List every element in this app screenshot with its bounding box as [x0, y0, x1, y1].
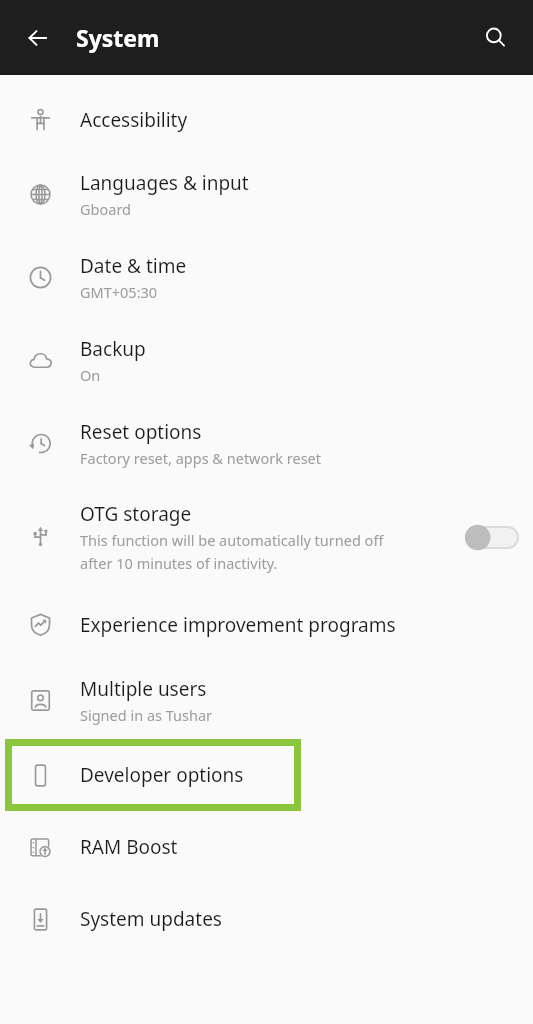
staticText: Experience improvement programs [80, 612, 396, 638]
staticText: after 10 minutes of inactivity. [80, 553, 278, 573]
button[interactable]: Accessibility [0, 87, 533, 153]
staticText: Gboard [80, 199, 131, 219]
staticText: Reset options [80, 419, 202, 445]
staticText: Accessibility [80, 107, 188, 133]
button[interactable]: OTG storage toggle [468, 526, 518, 548]
staticText: Date & time [80, 253, 187, 279]
staticText: System [76, 22, 160, 53]
staticText: Developer options [80, 762, 244, 788]
staticText: This function will be automatically turn… [80, 530, 384, 550]
button[interactable]: Reset options [0, 402, 533, 485]
staticText: Multiple users [80, 676, 207, 702]
staticText: GMT+05:30 [80, 282, 158, 302]
button[interactable]: OTG storage [0, 485, 533, 588]
staticText: Signed in as Tushar [80, 705, 213, 725]
button[interactable]: Languages & input [0, 153, 533, 236]
button[interactable]: Back [0, 0, 76, 75]
button[interactable]: Backup [0, 319, 533, 402]
staticText: System updates [80, 906, 222, 932]
button[interactable]: Date & time [0, 236, 533, 319]
staticText: OTG storage [80, 501, 192, 527]
button[interactable]: RAM Boost [0, 811, 533, 883]
staticText: On [80, 365, 101, 385]
staticText: Factory reset, apps & network reset [80, 448, 322, 468]
button[interactable]: Multiple users [0, 661, 533, 739]
staticText: Languages & input [80, 170, 249, 196]
staticText: RAM Boost [80, 834, 178, 860]
button[interactable]: Search [457, 0, 533, 75]
button[interactable]: Developer options [0, 739, 533, 811]
staticText: Backup [80, 336, 146, 362]
button[interactable]: System updates [0, 883, 533, 955]
button[interactable]: Experience improvement programs [0, 588, 533, 661]
